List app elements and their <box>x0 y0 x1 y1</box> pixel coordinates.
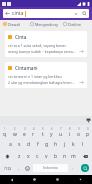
staticText: Diawali <box>8 22 21 27</box>
button[interactable]: 5 <box>38 126 47 138</box>
button[interactable]: v <box>42 150 51 162</box>
staticText: 9 <box>78 127 80 131</box>
button[interactable]: Cintamani <box>5 62 87 88</box>
button[interactable]: Recents <box>46 175 69 184</box>
staticText: 8 <box>69 127 71 131</box>
button[interactable]: x <box>24 150 33 162</box>
button[interactable]: Menu <box>69 175 92 184</box>
staticText: r <box>32 131 35 138</box>
staticText: . <box>72 165 74 171</box>
staticText: Cintamani <box>15 65 38 71</box>
button[interactable]: d <box>24 138 33 150</box>
button[interactable]: m <box>69 150 78 162</box>
button[interactable]: s <box>15 138 24 150</box>
button[interactable]: Cinta <box>5 31 87 57</box>
staticText: 1 <box>4 127 6 131</box>
button[interactable]: 3 <box>20 126 29 138</box>
button[interactable]: Search <box>78 163 91 173</box>
button[interactable]: Indonesia <box>33 164 68 172</box>
staticText: p <box>86 131 90 138</box>
staticText: x <box>27 153 30 160</box>
staticText: c <box>36 153 39 160</box>
button[interactable]: a <box>6 138 15 150</box>
button[interactable]: k <box>69 138 78 150</box>
staticText: m <box>71 153 76 160</box>
button[interactable]: z <box>15 150 24 162</box>
button[interactable]: Back <box>3 9 12 18</box>
staticText: 3 <box>24 127 26 131</box>
button[interactable]: c <box>33 150 42 162</box>
staticText: orang tuanya sudah ~ kepadanya semua... <box>8 49 76 54</box>
button[interactable]: 6 <box>47 126 56 138</box>
button[interactable]: Diawali <box>3 20 30 28</box>
button[interactable]: g <box>42 138 51 150</box>
button[interactable]: Home <box>23 175 46 184</box>
staticText: y <box>50 131 53 138</box>
button[interactable]: Mengandung <box>30 20 63 28</box>
button[interactable]: Open entry <box>78 48 84 54</box>
button[interactable]: Hide keyboard <box>84 116 92 125</box>
staticText: q <box>3 131 7 138</box>
button[interactable]: Back <box>0 175 23 184</box>
button[interactable]: 9 <box>74 126 83 138</box>
staticText: t <box>42 131 44 138</box>
button[interactable]: 2 <box>10 126 20 138</box>
staticText: u <box>59 131 63 138</box>
staticText: cin·ta·ma·ni n 1 intan yg berkilau. <box>8 74 63 79</box>
button[interactable]: j <box>60 138 69 150</box>
button[interactable]: 1 <box>0 126 10 138</box>
staticText: cinta <box>12 10 24 17</box>
staticText: a <box>9 141 12 148</box>
staticText: l <box>82 141 84 148</box>
staticText: i <box>69 131 71 138</box>
staticText: e <box>23 131 26 138</box>
button[interactable]: 7 <box>56 126 65 138</box>
button[interactable]: Clear <box>72 10 80 18</box>
staticText: b <box>54 153 58 160</box>
button[interactable]: 4 <box>29 126 38 138</box>
staticText: n <box>63 153 67 160</box>
button[interactable]: Emoji <box>23 162 32 174</box>
button[interactable]: ?123 <box>0 162 15 174</box>
button[interactable]: 0 <box>83 126 92 138</box>
staticText: 0 <box>87 127 89 131</box>
staticText: Indonesia <box>43 166 58 170</box>
staticText: w <box>13 131 17 138</box>
staticText: Mengandung <box>35 22 58 27</box>
button[interactable]: 8 <box>65 126 74 138</box>
staticText: z <box>18 153 21 160</box>
button[interactable]: Diakhiri <box>63 20 89 28</box>
staticText: v <box>45 153 48 160</box>
button[interactable]: l <box>78 138 87 150</box>
button[interactable]: b <box>51 150 60 162</box>
button[interactable]: Open entry <box>78 79 84 85</box>
staticText: j <box>64 141 66 148</box>
staticText: ?123 <box>4 166 12 171</box>
button[interactable]: Backspace <box>78 150 92 162</box>
staticText: 2 <box>14 127 16 131</box>
staticText: 6 <box>51 127 53 131</box>
staticText: 5 <box>42 127 44 131</box>
staticText: s <box>18 141 21 148</box>
staticText: Cinta <box>15 34 27 40</box>
staticText: 2 ular yg mendatangkan bahagia (menu... <box>8 80 76 85</box>
button[interactable]: f <box>33 138 42 150</box>
staticText: f <box>37 141 39 148</box>
button[interactable]: h <box>51 138 60 150</box>
button[interactable]: Shift <box>0 150 15 162</box>
button[interactable]: Search <box>80 9 89 18</box>
staticText: k <box>72 141 75 148</box>
staticText: cin·ta a 1 suka sekali; sayang benar: <box>8 43 67 48</box>
button[interactable]: , <box>15 162 23 174</box>
button[interactable]: n <box>60 150 69 162</box>
staticText: Diakhiri <box>68 22 82 27</box>
staticText: d <box>27 141 31 148</box>
staticText: h <box>54 141 58 148</box>
staticText: o <box>77 131 81 138</box>
staticText: 7 <box>60 127 62 131</box>
staticText: , <box>18 165 20 171</box>
